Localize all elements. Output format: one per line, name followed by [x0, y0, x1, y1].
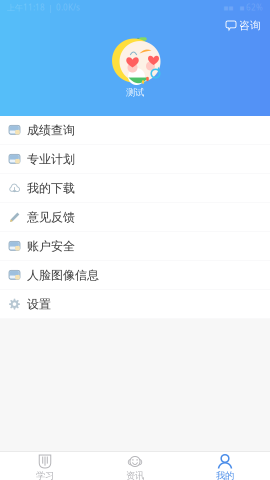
button[interactable]: 我的 — [180, 452, 270, 480]
staticText: 测试 — [126, 86, 144, 98]
staticText: 我的 — [216, 470, 234, 480]
staticText: ▪▪ ▪ 62% — [223, 2, 263, 13]
staticText: 我的下载 — [27, 181, 75, 195]
staticText: 上午11:18 ❘ 0.0K/s — [7, 2, 80, 13]
button[interactable]: 学习 — [0, 452, 90, 480]
button[interactable]: 意见反馈 — [0, 203, 270, 232]
staticText: 咨询 — [239, 19, 261, 32]
staticText: 人脸图像信息 — [27, 268, 99, 282]
button[interactable]: 专业计划 — [0, 145, 270, 174]
staticText: 专业计划 — [27, 152, 75, 166]
button[interactable]: 设置 — [0, 290, 270, 319]
button[interactable]: 我的下载 — [0, 174, 270, 203]
staticText: 设置 — [27, 297, 51, 311]
staticText: 账户安全 — [27, 239, 75, 253]
staticText: 资讯 — [126, 470, 144, 480]
button[interactable]: 账户安全 — [0, 232, 270, 261]
button[interactable]: 资讯 — [90, 452, 180, 480]
button[interactable]: 咨询 — [222, 19, 265, 32]
button[interactable]: 人脸图像信息 — [0, 261, 270, 290]
staticText: 意见反馈 — [27, 210, 75, 224]
button[interactable]: 成绩查询 — [0, 116, 270, 145]
staticText: 学习 — [36, 470, 54, 480]
staticText: 成绩查询 — [27, 123, 75, 137]
